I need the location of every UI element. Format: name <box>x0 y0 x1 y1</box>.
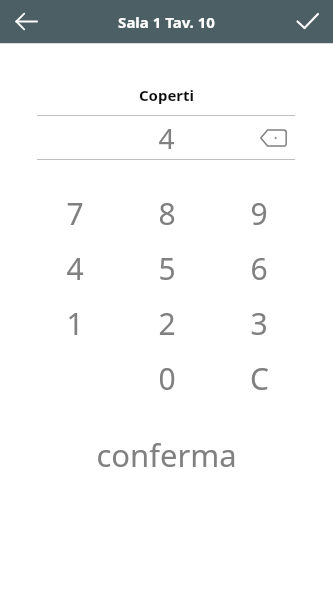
button[interactable]: 2 <box>121 296 213 351</box>
staticText: 4 <box>158 119 175 157</box>
staticText: 7 <box>66 193 84 234</box>
button[interactable]: 1 <box>28 296 121 351</box>
staticText: 3 <box>250 303 268 344</box>
button[interactable]: Back <box>0 0 52 43</box>
button[interactable]: Backspace <box>251 116 295 159</box>
button[interactable]: 8 <box>121 186 213 241</box>
staticText: 8 <box>158 193 176 234</box>
staticText: 5 <box>158 248 176 289</box>
button[interactable]: 6 <box>213 241 305 296</box>
staticText: 4 <box>66 248 84 289</box>
button[interactable]: 9 <box>213 186 305 241</box>
staticText: 1 <box>66 303 84 344</box>
button[interactable]: 0 <box>121 351 213 406</box>
staticText: 2 <box>158 303 176 344</box>
staticText: Coperti <box>0 85 333 105</box>
staticText: C <box>250 358 269 399</box>
staticText: 9 <box>250 193 268 234</box>
staticText: conferma <box>96 434 237 476</box>
button[interactable]: conferma <box>0 428 333 482</box>
button[interactable]: C <box>213 351 305 406</box>
button[interactable]: 5 <box>121 241 213 296</box>
staticText: Sala 1 Tav. 10 <box>118 12 215 32</box>
button[interactable]: 3 <box>213 296 305 351</box>
button[interactable]: 4 <box>28 241 121 296</box>
staticText: 0 <box>158 358 176 399</box>
button[interactable]: Confirm <box>281 0 333 43</box>
staticText: 6 <box>250 248 268 289</box>
button[interactable]: 7 <box>28 186 121 241</box>
